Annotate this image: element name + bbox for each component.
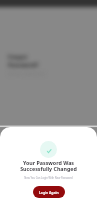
staticText: Now You Can Login With New Password xyxy=(24,176,73,180)
other: Success xyxy=(40,141,57,158)
staticText: Forgot Password? xyxy=(8,53,39,69)
staticText: Your Password Was Successfully Changed xyxy=(20,159,77,173)
button[interactable]: Login Again xyxy=(33,186,65,198)
staticText: Login Again xyxy=(39,190,59,195)
